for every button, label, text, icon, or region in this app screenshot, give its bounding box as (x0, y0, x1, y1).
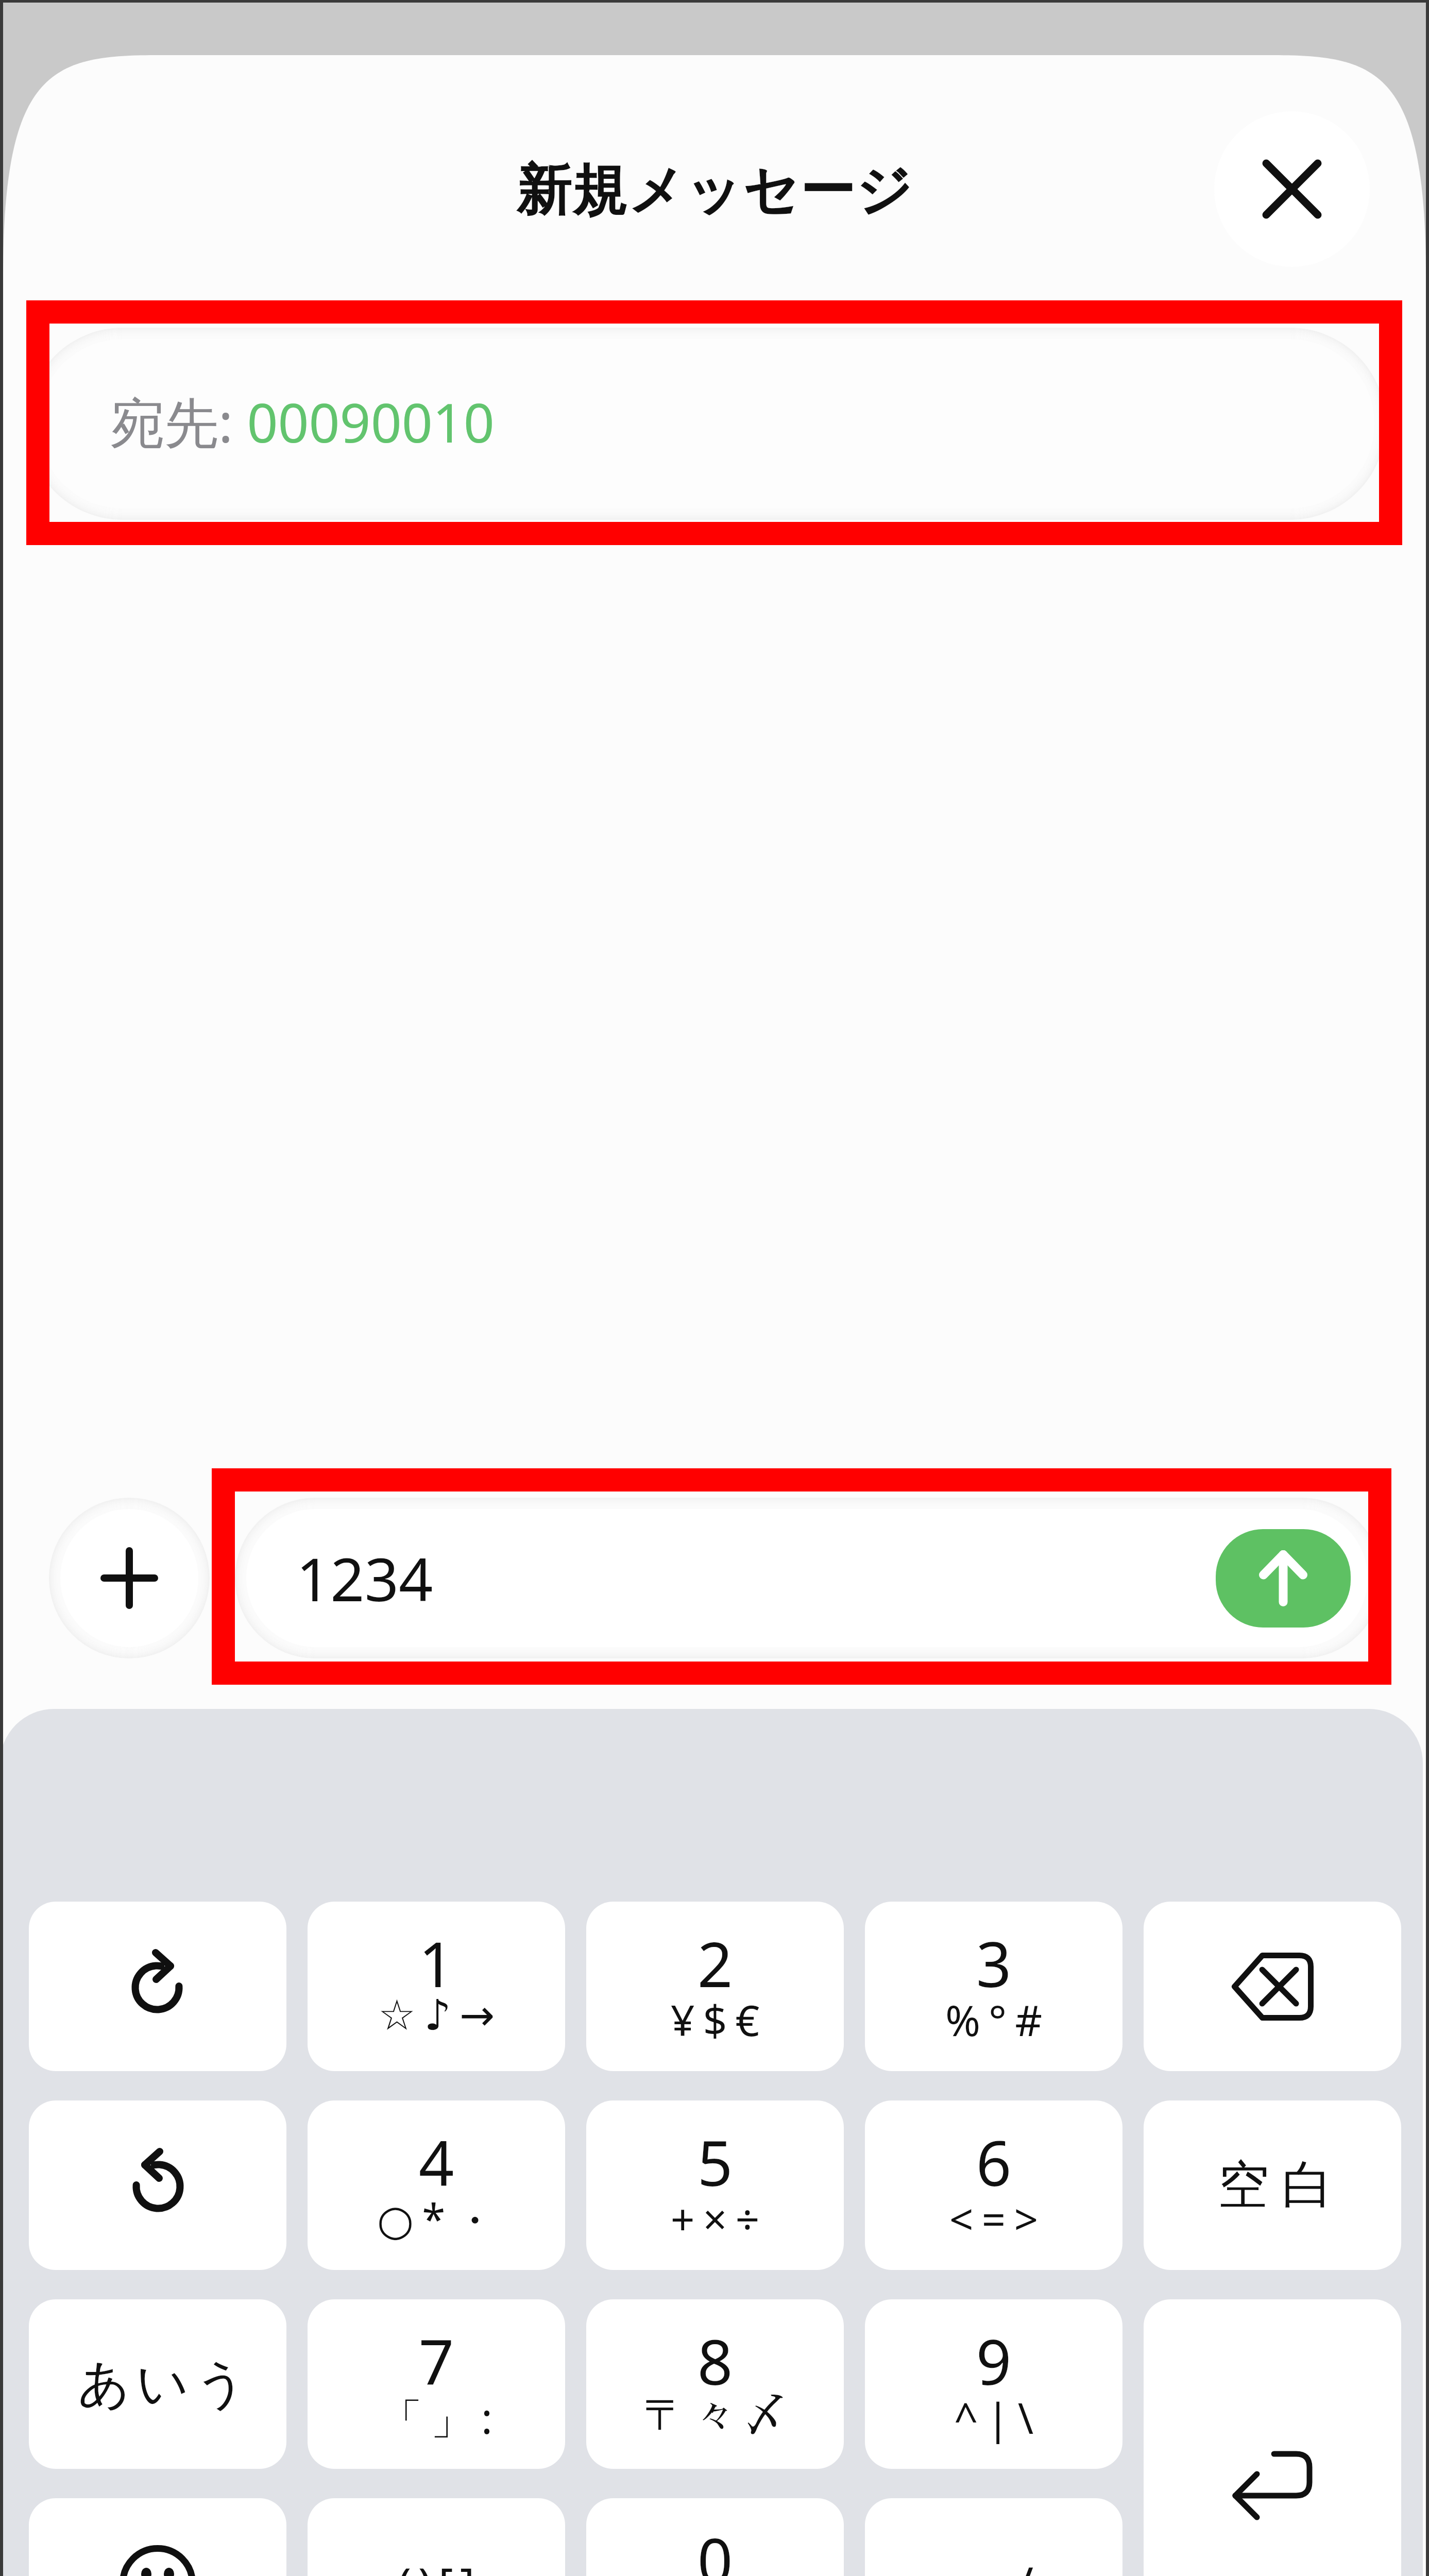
button[interactable]: 7 (308, 2299, 565, 2469)
staticText: ¥$€ (590, 1991, 844, 2048)
staticText: あいう (78, 2352, 253, 2417)
button[interactable]: 削除 (1144, 1902, 1401, 2071)
staticText: ()[] (398, 2552, 482, 2576)
staticText: .,-/ (954, 2551, 1041, 2576)
button[interactable]: 0 (586, 2498, 844, 2576)
button[interactable]: やり直す (29, 1902, 286, 2071)
button[interactable]: 閉じる (1214, 111, 1370, 267)
staticText: 4 (308, 2120, 565, 2204)
staticText: 2 (586, 1921, 844, 2005)
button[interactable]: 9 (865, 2299, 1122, 2469)
button[interactable]: 3 (865, 1902, 1122, 2071)
staticText: %°# (869, 1991, 1122, 2048)
staticText: 〒々〆 (590, 2388, 844, 2442)
staticText: 1 (308, 1921, 565, 2005)
button[interactable]: 8 (586, 2299, 844, 2469)
staticText: 「」: (312, 2388, 565, 2446)
button[interactable]: ()[] (308, 2498, 565, 2576)
button[interactable]: 送信 (1216, 1529, 1351, 1628)
staticText: 宛先: 00090010 (110, 385, 495, 459)
button[interactable]: 追加 (60, 1509, 198, 1647)
button[interactable]: 5 (586, 2100, 844, 2270)
button[interactable]: 空白 (1144, 2100, 1401, 2270)
staticText: 7 (308, 2319, 565, 2403)
button[interactable]: あいう (29, 2299, 286, 2469)
staticText: ○*・ (312, 2190, 565, 2247)
staticText: ^|\ (869, 2388, 1122, 2446)
staticText: <=> (869, 2190, 1122, 2247)
button[interactable]: 6 (865, 2100, 1122, 2270)
staticText: ☆♪→ (312, 1991, 565, 2040)
button[interactable]: 改行 (1144, 2299, 1401, 2576)
button[interactable]: 1234 (246, 1509, 1368, 1647)
button[interactable]: 宛先: 00090010 (38, 339, 1374, 509)
button[interactable]: 元に戻す (29, 2100, 286, 2270)
button[interactable]: .,-/ (865, 2498, 1122, 2576)
staticText: 6 (865, 2120, 1122, 2204)
button[interactable]: 4 (308, 2100, 565, 2270)
staticText: 3 (865, 1921, 1122, 2005)
staticText: 1234 (296, 1537, 433, 1619)
staticText: 空白 (1212, 2153, 1339, 2218)
staticText: 5 (586, 2120, 844, 2204)
staticText: 0 (586, 2518, 844, 2576)
staticText: 9 (865, 2319, 1122, 2403)
staticText: 新規メッセージ (3, 156, 1426, 226)
staticText: 8 (586, 2319, 844, 2403)
staticText: +×÷ (590, 2190, 844, 2247)
button[interactable]: 2 (586, 1902, 844, 2071)
button[interactable]: 絵文字 (29, 2498, 286, 2576)
button[interactable]: 1 (308, 1902, 565, 2071)
